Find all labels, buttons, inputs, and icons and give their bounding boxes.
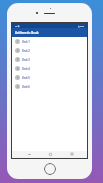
staticText: Unit 3 [22,58,30,62]
staticText: Arithmetic Book [15,31,39,35]
staticText: Unit 4 [22,67,30,71]
button[interactable]: Home [48,152,52,156]
button[interactable]: 1 [12,37,87,46]
staticText: Unit 1 [22,40,30,44]
staticText: 2 [17,49,19,53]
staticText: ▬ ● [15,25,20,28]
staticText: Unit 2 [22,49,30,53]
staticText: 5 [17,76,19,80]
staticText: 6 [17,85,19,89]
button[interactable]: 3 [12,55,87,64]
button[interactable]: Back [27,152,31,156]
staticText: ▲▬▬ [78,25,85,28]
staticText: Unit 6 [22,85,30,89]
button[interactable]: 2 [12,46,87,55]
button[interactable]: 6 [12,82,87,91]
button[interactable]: 4 [12,64,87,73]
staticText: Unit 5 [22,76,30,80]
button[interactable]: Recents [70,152,74,156]
staticText: 4 [17,67,19,71]
staticText: 3 [17,58,19,62]
button[interactable]: 5 [12,73,87,82]
staticText: 1 [17,40,19,44]
